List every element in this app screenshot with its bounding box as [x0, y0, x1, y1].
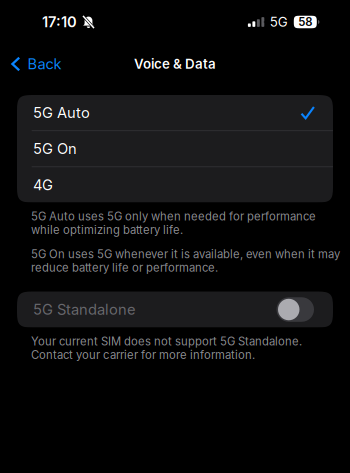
- button[interactable]: 4G: [17, 167, 333, 202]
- button[interactable]: 5G Auto: [17, 95, 333, 130]
- button[interactable]: Back: [0, 44, 70, 84]
- staticText: Voice & Data: [134, 56, 216, 72]
- staticText: 5G Auto: [33, 104, 90, 121]
- staticText: 17:10: [42, 13, 77, 31]
- button[interactable]: 5G On: [17, 131, 333, 166]
- button[interactable]: 5G Standalone: [0, 291, 350, 327]
- staticText: Your current SIM does not support 5G Sta…: [31, 334, 302, 362]
- staticText: 5G On uses 5G whenever it is available, …: [31, 247, 340, 275]
- staticText: 5G On: [33, 140, 77, 158]
- staticText: 58: [298, 15, 312, 29]
- staticText: 5G Auto uses 5G only when needed for per…: [31, 209, 316, 237]
- staticText: 4G: [33, 176, 53, 194]
- staticText: 5G Standalone: [33, 301, 136, 318]
- staticText: Back: [28, 55, 62, 73]
- staticText: 5G: [270, 14, 288, 30]
